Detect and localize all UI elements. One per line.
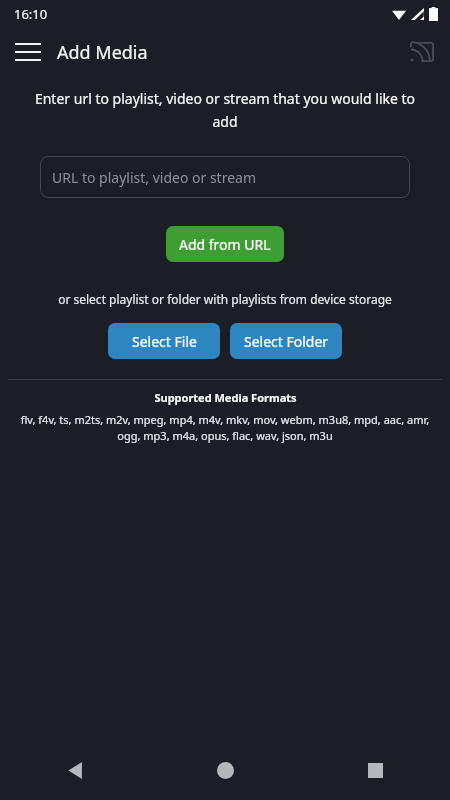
staticText: Supported Media Formats: [154, 390, 297, 405]
button[interactable]: Add from URL: [166, 226, 284, 262]
button[interactable]: Select Folder: [230, 323, 342, 359]
staticText: flv, f4v, ts, m2ts, m2v, mpeg, mp4, m4v,…: [18, 412, 432, 444]
button[interactable]: Open navigation menu: [6, 30, 50, 74]
button[interactable]: Select File: [108, 323, 220, 359]
staticText: Add from URL: [179, 235, 271, 254]
staticText: Enter url to playlist, video or stream t…: [22, 89, 428, 131]
button[interactable]: Recent apps: [300, 740, 450, 800]
button[interactable]: Back: [0, 740, 150, 800]
staticText: Select File: [132, 332, 197, 351]
staticText: 16:10: [14, 5, 48, 23]
staticText: Add Media: [57, 40, 148, 65]
staticText: Select Folder: [244, 332, 329, 351]
staticText: URL to playlist, video or stream: [52, 168, 257, 187]
button[interactable]: Cast to device: [400, 30, 444, 74]
button[interactable]: URL to playlist, video or stream: [40, 156, 410, 198]
button[interactable]: Home: [150, 740, 300, 800]
staticText: or select playlist or folder with playli…: [18, 291, 432, 307]
